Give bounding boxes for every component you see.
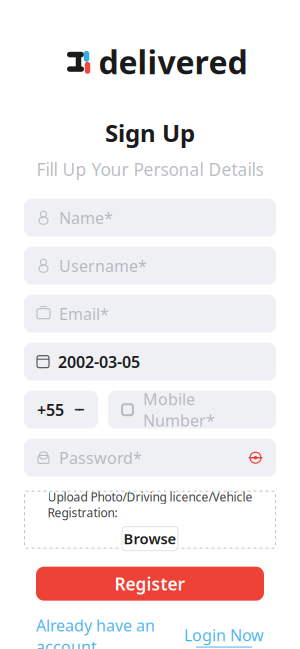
staticText: Already have an account (36, 615, 155, 649)
button[interactable]: Password* (24, 439, 276, 477)
button[interactable]: Login Now (184, 624, 264, 647)
staticText: Name* (59, 207, 113, 228)
button[interactable]: +55 (24, 391, 98, 429)
staticText: Upload Photo/Driving licence/Vehicle Reg… (47, 489, 252, 521)
staticText: Username* (59, 255, 147, 276)
staticText: +55 (37, 399, 64, 420)
staticText: Login Now (184, 624, 264, 645)
staticText: Mobile Number* (143, 388, 215, 431)
button[interactable]: Mobile Number* (108, 391, 276, 429)
staticText: 2002-03-05 (58, 351, 140, 372)
button[interactable]: Register (36, 567, 264, 601)
staticText: Fill Up Your Personal Details (36, 158, 263, 181)
staticText: Password* (59, 447, 142, 468)
staticText: delivered (98, 41, 247, 83)
button[interactable]: Browse (122, 527, 178, 551)
button[interactable]: Name* (24, 199, 276, 237)
button[interactable]: 2002-03-05 (24, 343, 276, 381)
button[interactable]: Email* (24, 295, 276, 333)
button[interactable]: Already have an account (36, 615, 155, 649)
staticText: Email* (59, 303, 109, 324)
staticText: Sign Up (105, 117, 195, 149)
staticText: Register (114, 572, 185, 595)
button[interactable]: Username* (24, 247, 276, 285)
staticText: Browse (123, 529, 176, 548)
